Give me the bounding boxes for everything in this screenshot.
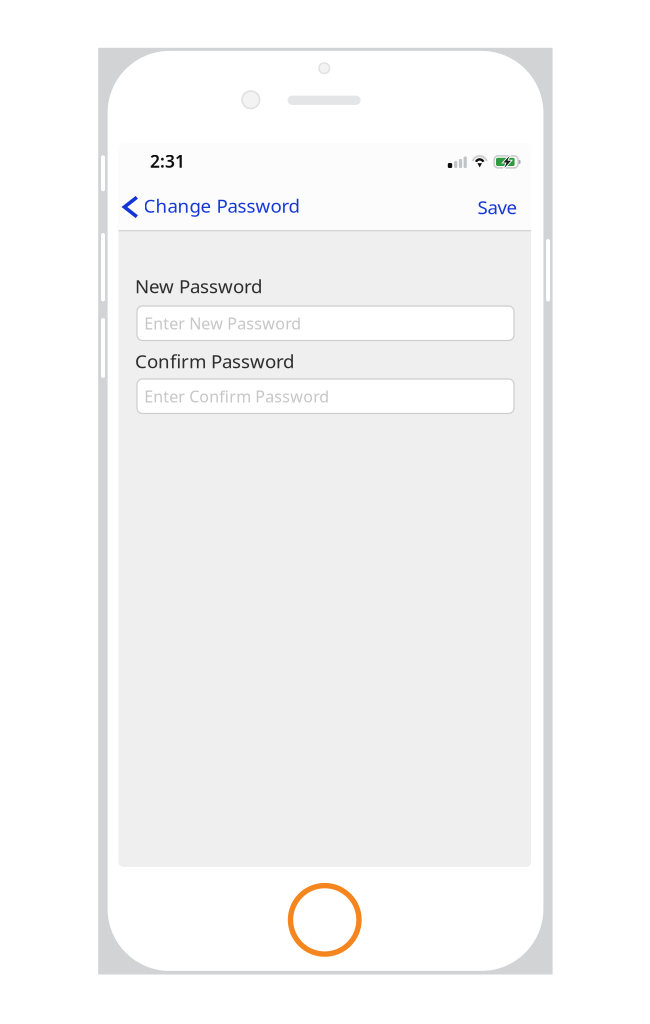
button[interactable]: Enter Confirm Password xyxy=(137,379,514,413)
staticText: New Password xyxy=(135,274,262,298)
button[interactable]: Save xyxy=(461,188,531,225)
staticText: Change Password xyxy=(144,193,300,218)
button[interactable]: Enter New Password xyxy=(137,306,514,340)
staticText: Confirm Password xyxy=(135,349,294,373)
button[interactable]: Change Password xyxy=(118,188,312,225)
staticText: Enter Confirm Password xyxy=(144,386,329,407)
staticText: Enter New Password xyxy=(144,313,301,334)
staticText: Save xyxy=(477,195,517,219)
staticText: 2:31 xyxy=(150,149,185,172)
button[interactable]: Home xyxy=(290,886,359,954)
